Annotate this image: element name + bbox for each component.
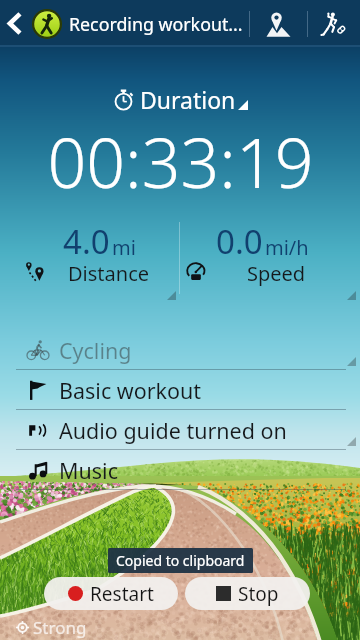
staticText: 0.0 — [216, 219, 263, 264]
staticText: Duration — [140, 84, 236, 115]
button[interactable]: Duration — [0, 84, 360, 115]
staticText: Recording workout... — [69, 12, 243, 36]
staticText: Audio guide turned on — [59, 416, 287, 445]
button[interactable]: Restart — [44, 577, 178, 610]
staticText: Stop — [238, 581, 279, 607]
staticText: Copied to clipboard — [116, 551, 245, 570]
staticText: Distance — [68, 260, 150, 287]
staticText: Speed — [247, 260, 306, 287]
button[interactable]: Cycling — [0, 330, 360, 370]
button[interactable]: Audio guide turned on — [0, 410, 360, 450]
button[interactable]: Back — [0, 0, 249, 47]
other: GPS signal — [16, 621, 29, 634]
staticText: Restart — [90, 581, 154, 607]
button[interactable]: Music — [0, 450, 360, 490]
staticText: mi/h — [265, 234, 309, 261]
button[interactable]: Activity details — [308, 0, 360, 47]
button[interactable]: Stop — [185, 577, 310, 610]
staticText: mi — [112, 234, 136, 261]
button[interactable]: 0.0 — [180, 212, 360, 304]
staticText: 00:33:19 — [47, 115, 314, 208]
other: Back — [8, 12, 21, 35]
button[interactable]: Map — [250, 0, 307, 47]
button[interactable]: 4.0 — [0, 212, 180, 304]
staticText: 4.0 — [63, 219, 110, 264]
staticText: Strong — [33, 616, 87, 639]
staticText: Cycling — [59, 336, 132, 365]
staticText: Basic workout — [59, 376, 202, 405]
button[interactable]: Basic workout — [0, 370, 360, 410]
staticText: Music — [59, 456, 118, 485]
